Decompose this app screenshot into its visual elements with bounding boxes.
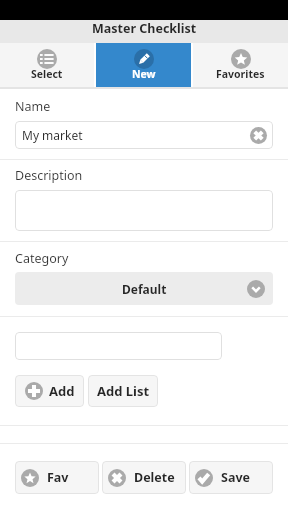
staticText: My market <box>22 127 83 143</box>
button[interactable]: Delete <box>102 461 186 494</box>
staticText: Description <box>15 167 83 184</box>
button[interactable] <box>15 190 273 231</box>
staticText: Add List <box>97 382 150 400</box>
button[interactable]: Select <box>0 43 94 87</box>
button[interactable]: Add List <box>88 375 158 407</box>
staticText: Fav <box>47 469 69 486</box>
staticText: Master Checklist <box>92 20 197 37</box>
staticText: Name <box>15 98 51 115</box>
staticText: Add <box>49 382 75 400</box>
button[interactable]: Default <box>15 272 273 305</box>
staticText: Default <box>122 281 167 297</box>
staticText: Save <box>221 469 250 486</box>
button[interactable]: My market <box>15 121 273 149</box>
button[interactable] <box>15 332 222 360</box>
staticText: Category <box>15 250 69 267</box>
button[interactable]: Add <box>15 375 84 407</box>
staticText: Delete <box>134 469 175 486</box>
button[interactable]: New <box>96 43 191 87</box>
button[interactable]: Favorites <box>193 43 288 87</box>
button[interactable]: Save <box>189 461 273 494</box>
staticText: New <box>132 67 156 81</box>
button[interactable]: Fav <box>15 461 99 494</box>
button[interactable]: Clear text <box>250 127 267 144</box>
staticText: Select <box>31 67 63 81</box>
staticText: Favorites <box>216 67 265 81</box>
